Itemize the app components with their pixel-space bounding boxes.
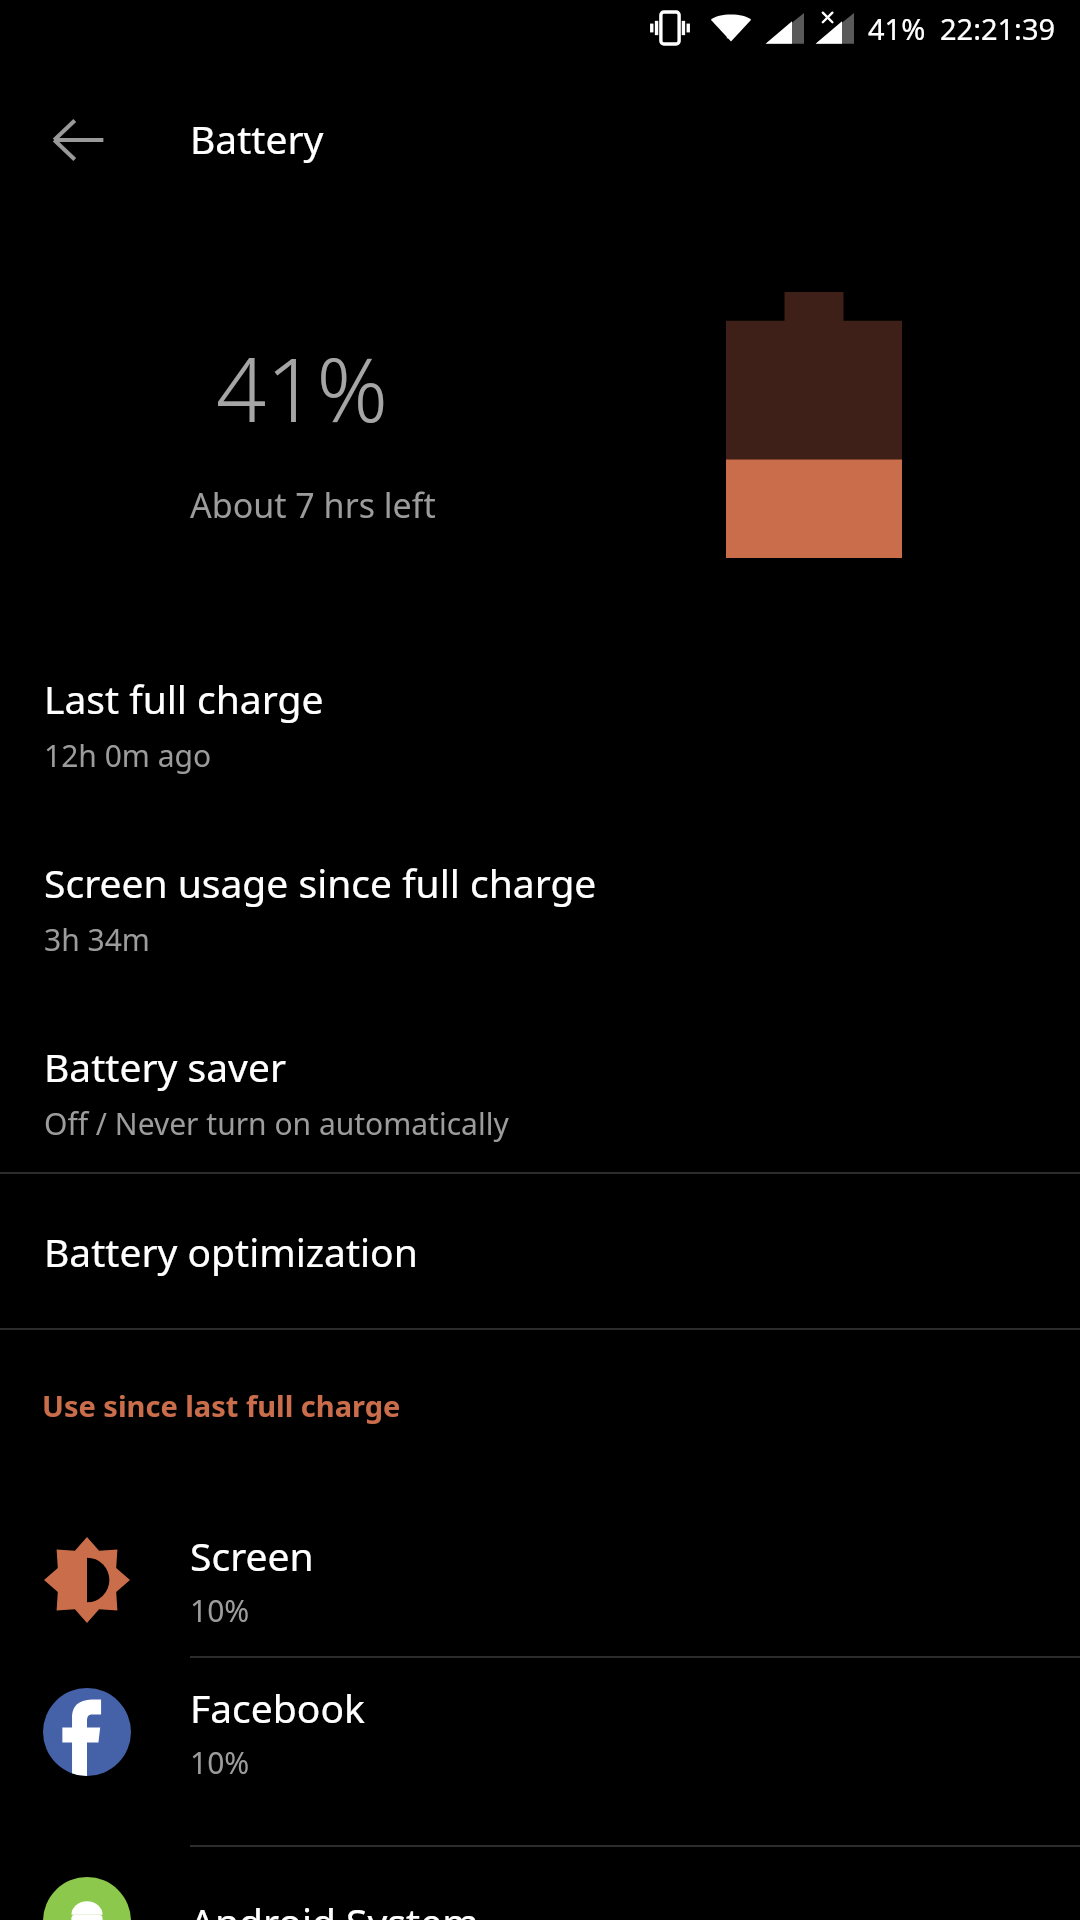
staticText: Screen usage since full charge: [44, 856, 597, 909]
staticText: 10%: [190, 1742, 250, 1783]
staticText: Last full charge: [44, 672, 324, 725]
button[interactable]: Battery optimization: [0, 1174, 1080, 1328]
staticText: Battery: [190, 112, 324, 165]
staticText: 3h 34m: [44, 919, 150, 960]
button[interactable]: Battery saver: [0, 1036, 1080, 1158]
staticText: 10%: [190, 1590, 250, 1631]
staticText: 41%: [216, 328, 388, 448]
staticText: 41%: [868, 9, 926, 48]
staticText: Screen: [190, 1529, 314, 1582]
staticText: 12h 0m ago: [44, 735, 212, 776]
button[interactable]: Android System: [0, 1841, 1080, 1920]
staticText: Android System: [190, 1895, 479, 1920]
button[interactable]: Screen: [0, 1500, 1080, 1660]
button[interactable]: Screen usage since full charge: [0, 852, 1080, 974]
staticText: Off / Never turn on automatically: [44, 1103, 509, 1144]
staticText: Battery optimization: [44, 1225, 418, 1278]
button[interactable]: Back: [30, 92, 126, 188]
button[interactable]: Last full charge: [0, 668, 1080, 790]
staticText: Battery saver: [44, 1040, 286, 1093]
staticText: About 7 hrs left: [190, 482, 436, 528]
staticText: 22:21:39: [940, 9, 1056, 48]
staticText: Facebook: [190, 1681, 365, 1734]
staticText: Use since last full charge: [42, 1386, 401, 1425]
button[interactable]: Facebook: [0, 1652, 1080, 1812]
